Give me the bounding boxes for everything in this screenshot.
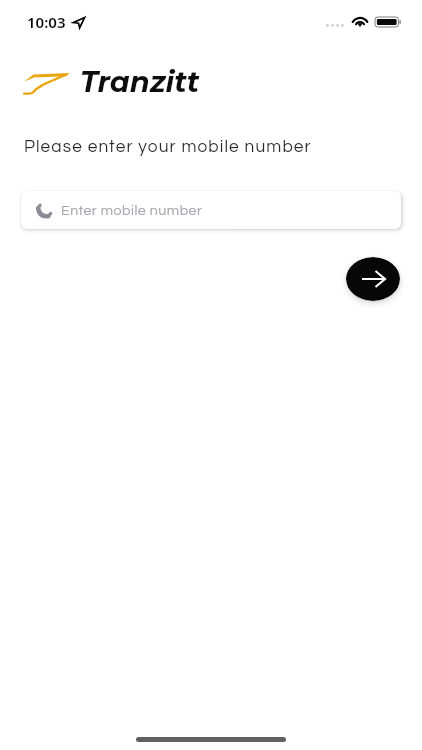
staticText: Tranzitt (80, 64, 200, 99)
staticText: 10:03 (27, 12, 66, 32)
staticText: Enter mobile number (61, 203, 203, 218)
button[interactable]: Enter mobile number (21, 191, 401, 229)
button[interactable]: Continue (346, 257, 400, 301)
staticText: Please enter your mobile number (24, 138, 312, 156)
